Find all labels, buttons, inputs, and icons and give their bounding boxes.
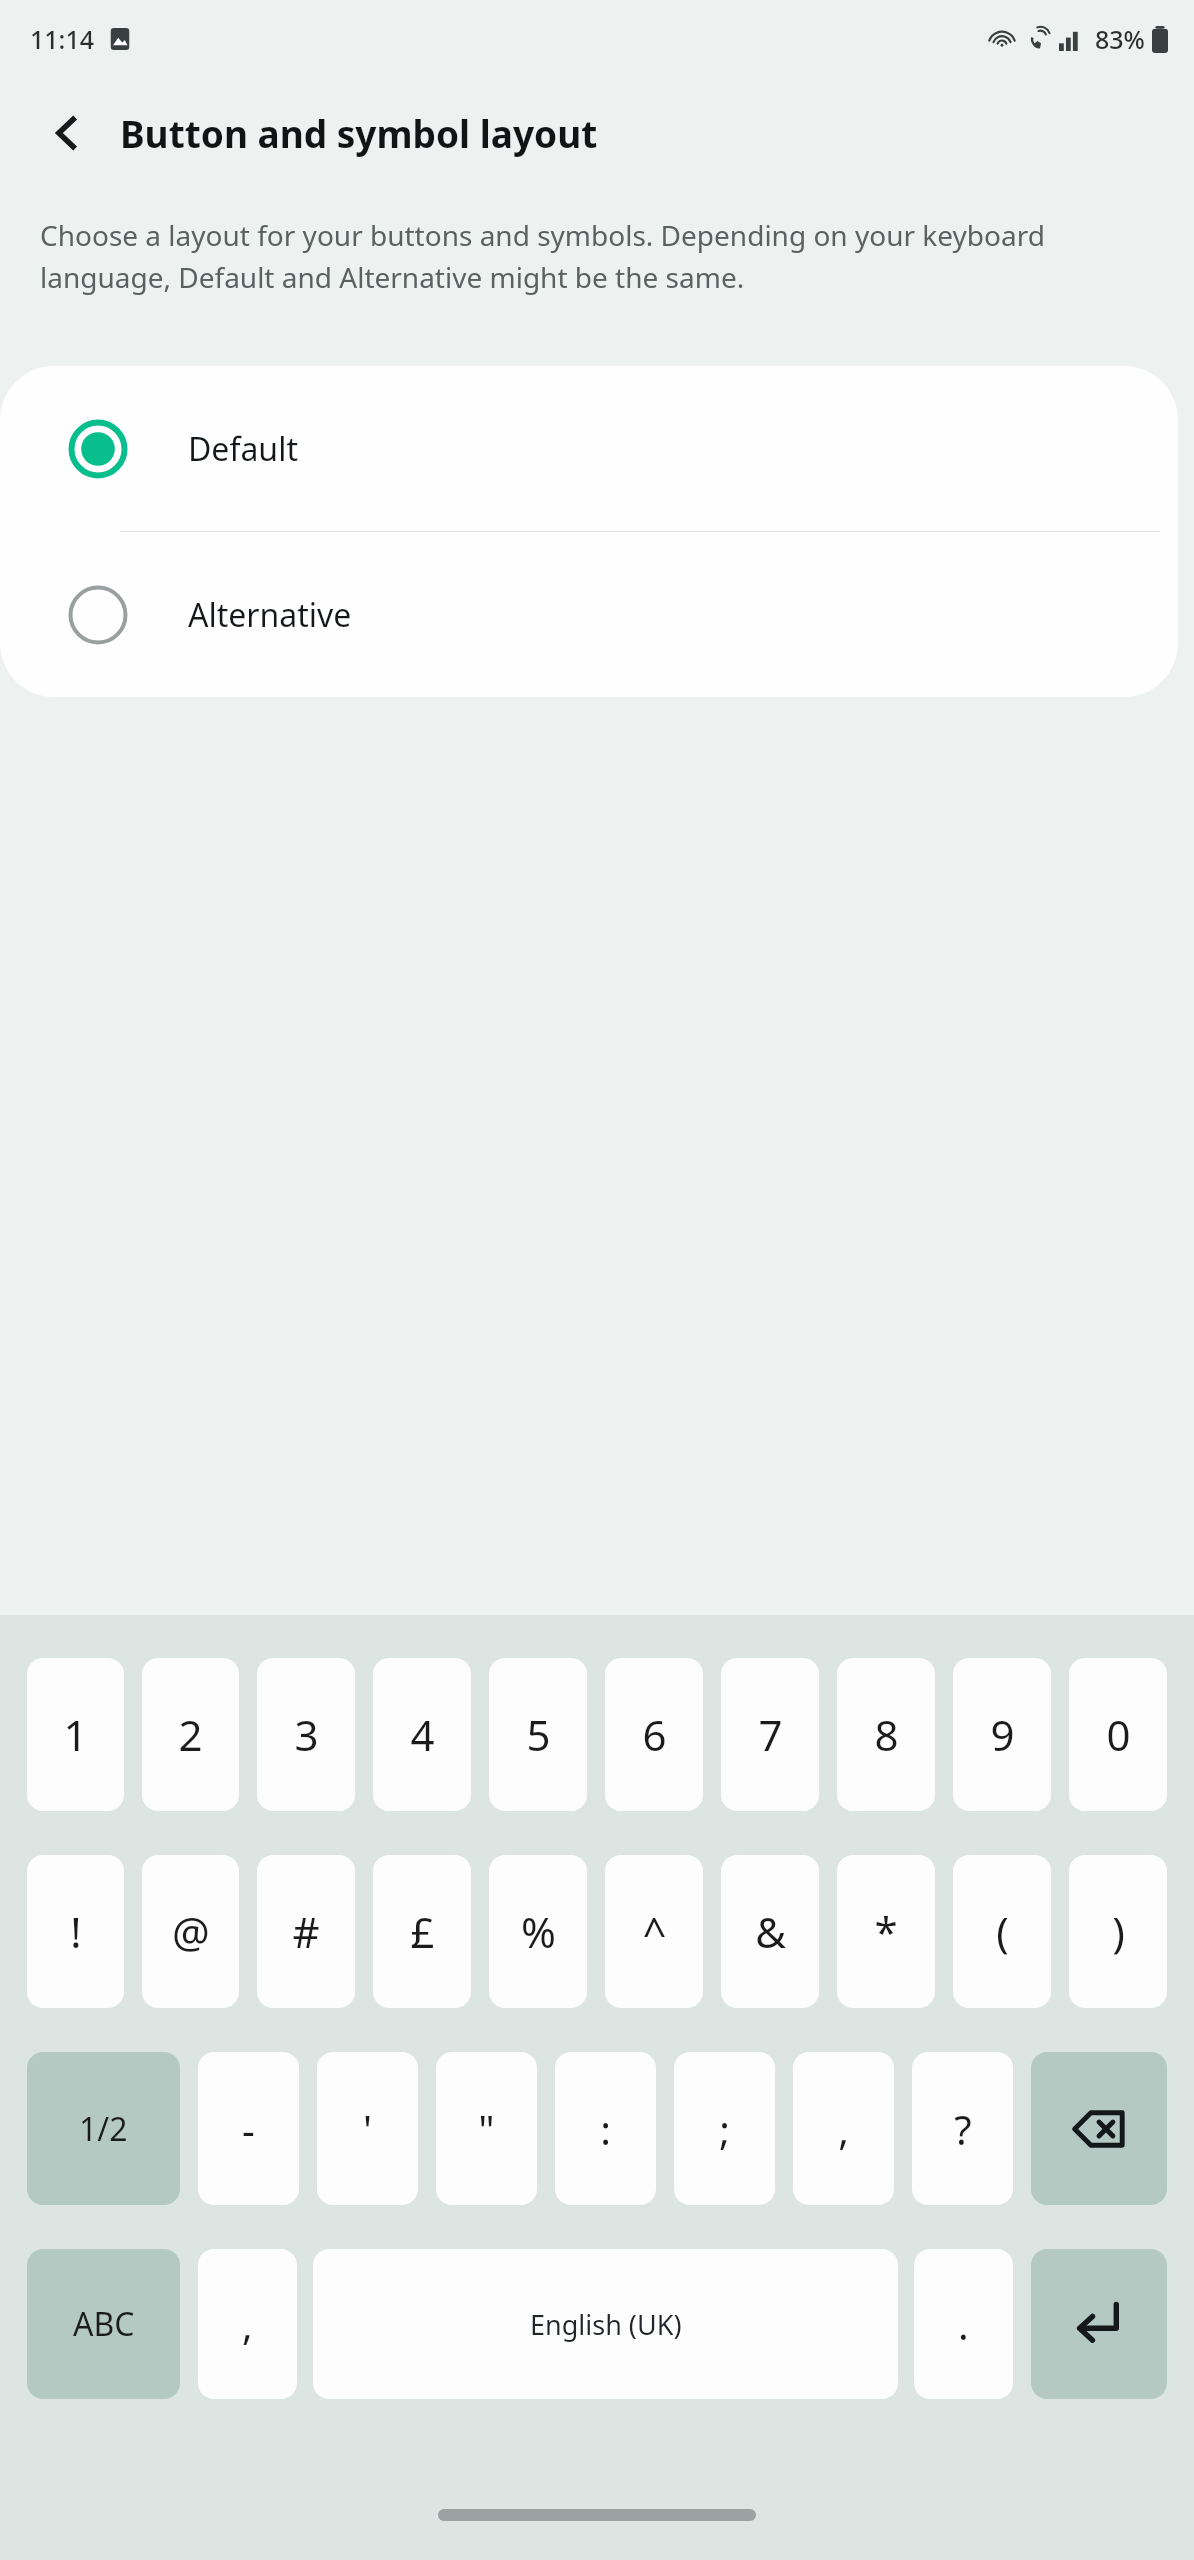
staticText: : — [600, 2102, 611, 2156]
button[interactable]: ' — [317, 2052, 418, 2205]
button[interactable]: & — [721, 1855, 819, 2008]
button[interactable]: : — [555, 2052, 656, 2205]
staticText: 7 — [758, 1706, 783, 1763]
button[interactable]: ( — [953, 1855, 1051, 2008]
staticText: 1 — [63, 1706, 88, 1763]
button[interactable]: 6 — [605, 1658, 703, 1811]
staticText: % — [521, 1903, 556, 1960]
staticText: 0 — [1106, 1706, 1131, 1763]
staticText: ' — [363, 2102, 372, 2156]
staticText: 6 — [642, 1706, 667, 1763]
staticText: Alternative — [188, 593, 352, 637]
button[interactable]: 5 — [489, 1658, 587, 1811]
button[interactable]: , — [198, 2249, 297, 2399]
button[interactable]: English (UK) — [313, 2249, 898, 2399]
button[interactable]: 3 — [257, 1658, 355, 1811]
staticText: ) — [1112, 1903, 1125, 1960]
button[interactable]: 1 — [27, 1658, 124, 1811]
button[interactable]: # — [257, 1855, 355, 2008]
staticText: 2 — [178, 1706, 203, 1763]
button[interactable]: 4 — [373, 1658, 471, 1811]
button[interactable]: - — [198, 2052, 299, 2205]
button[interactable]: @ — [142, 1855, 239, 2008]
button[interactable]: ABC — [27, 2249, 180, 2399]
button[interactable]: . — [914, 2249, 1013, 2399]
staticText: 4 — [410, 1706, 435, 1763]
button[interactable]: 8 — [837, 1658, 935, 1811]
button[interactable]: Default — [0, 366, 1178, 531]
button[interactable]: Alternative — [0, 532, 1178, 697]
staticText: 83% — [1095, 22, 1145, 56]
staticText: ^ — [642, 1903, 667, 1960]
button[interactable]: * — [837, 1855, 935, 2008]
staticText: @ — [172, 1903, 210, 1960]
button[interactable]: 1/2 — [27, 2052, 180, 2205]
staticText: 3 — [294, 1706, 319, 1763]
button[interactable]: 0 — [1069, 1658, 1167, 1811]
staticText: £ — [410, 1903, 435, 1960]
button[interactable]: ^ — [605, 1855, 703, 2008]
staticText: Default — [188, 427, 298, 471]
staticText: ; — [719, 2102, 730, 2156]
staticText: 1/2 — [79, 2107, 128, 2151]
staticText: ABC — [73, 2302, 135, 2346]
button[interactable]: ! — [27, 1855, 124, 2008]
button[interactable]: ; — [674, 2052, 775, 2205]
button[interactable]: £ — [373, 1855, 471, 2008]
button[interactable]: 9 — [953, 1658, 1051, 1811]
staticText: " — [478, 2102, 495, 2156]
button[interactable]: " — [436, 2052, 537, 2205]
button[interactable]: ? — [912, 2052, 1013, 2205]
staticText: ? — [954, 2102, 972, 2156]
button[interactable]: 7 — [721, 1658, 819, 1811]
staticText: # — [292, 1903, 320, 1960]
staticText: English (UK) — [530, 2306, 682, 2343]
staticText: ! — [70, 1903, 82, 1960]
button[interactable]: ) — [1069, 1855, 1167, 2008]
button[interactable]: Back — [36, 102, 98, 164]
button[interactable]: , — [793, 2052, 894, 2205]
button[interactable]: Backspace — [1031, 2052, 1167, 2205]
staticText: Button and symbol layout — [120, 108, 598, 158]
staticText: 5 — [526, 1706, 551, 1763]
staticText: Choose a layout for your buttons and sym… — [40, 216, 1124, 296]
staticText: 9 — [990, 1706, 1015, 1763]
staticText: , — [838, 2102, 849, 2156]
button[interactable]: Enter — [1031, 2249, 1167, 2399]
staticText: 8 — [874, 1706, 899, 1763]
staticText: , — [242, 2297, 253, 2351]
staticText: 11:14 — [30, 22, 95, 56]
button[interactable]: % — [489, 1855, 587, 2008]
staticText: * — [874, 1903, 898, 1960]
button[interactable]: 2 — [142, 1658, 239, 1811]
staticText: & — [755, 1903, 786, 1960]
staticText: ( — [996, 1903, 1009, 1960]
staticText: . — [958, 2297, 969, 2351]
staticText: - — [242, 2102, 255, 2156]
